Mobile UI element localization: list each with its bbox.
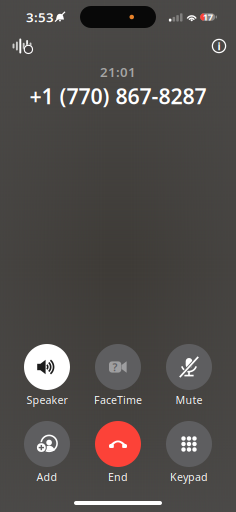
button[interactable]: Add [11, 421, 82, 481]
staticText: Keypad [170, 470, 208, 484]
staticText: 3:53 [26, 8, 54, 26]
button[interactable]: ? [82, 344, 153, 404]
staticText: Add [36, 470, 57, 484]
button[interactable]: Voice Isolation [7, 32, 37, 60]
staticText: ? [113, 360, 118, 374]
staticText: Mute [175, 393, 202, 407]
staticText: i [217, 39, 220, 53]
staticText: 17 [203, 11, 213, 23]
button[interactable]: Call Info [205, 32, 233, 60]
staticText: 21:01 [100, 63, 136, 81]
button[interactable]: Keypad [153, 421, 224, 481]
button[interactable]: End [82, 421, 153, 481]
button[interactable]: Speaker [11, 344, 82, 404]
button[interactable]: Mute [153, 344, 224, 404]
staticText: Speaker [26, 393, 67, 407]
staticText: FaceTime [94, 393, 142, 407]
staticText: End [108, 470, 128, 484]
staticText: +1 (770) 867-8287 [29, 82, 206, 110]
